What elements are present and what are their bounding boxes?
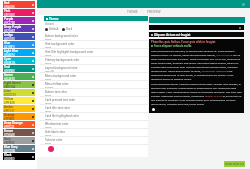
staticText: Button text color: [45, 90, 68, 94]
button[interactable]: Black: [3, 153, 35, 160]
button[interactable]: Purple: [3, 17, 35, 24]
staticText: Variant: [45, 22, 54, 26]
staticText: Layout background color: [45, 66, 78, 70]
staticText: none: [45, 94, 52, 97]
staticText: Amber: [4, 105, 14, 109]
staticText: Hint (file highlight) background color: [45, 50, 94, 54]
button[interactable]: Light Blue: [3, 49, 35, 56]
staticText: Aliquam dictum est feugiat: [154, 33, 191, 37]
button[interactable]: Brown: [3, 129, 35, 136]
button[interactable]: Indigo: [3, 33, 35, 40]
button[interactable]: Cyan: [3, 57, 35, 64]
button[interactable]: Teal: [3, 65, 35, 72]
button[interactable]: Yellow: [3, 97, 35, 104]
staticText: Blue Grey: [4, 145, 18, 149]
button[interactable]: Theme: [44, 16, 148, 21]
staticText: Yellow: [4, 97, 14, 101]
button[interactable]: Card title text color: [37, 105, 148, 113]
staticText: none: [45, 54, 52, 57]
staticText: none: [45, 38, 52, 41]
button[interactable]: Tab text color: [37, 137, 148, 145]
button[interactable]: Default: [45, 27, 59, 31]
button[interactable]: Aliquam dictum est feugiat: [149, 32, 244, 37]
button[interactable]: Button text color: [37, 89, 148, 97]
staticText: Hint background color: [45, 42, 75, 46]
staticText: Lime: [4, 89, 11, 93]
button[interactable]: Orange: [3, 113, 35, 120]
staticText: Red: [4, 1, 10, 5]
button[interactable]: Grey: [3, 137, 35, 144]
staticText: #F44336: [4, 5, 15, 8]
staticText: Light Green: [4, 81, 21, 85]
staticText: Tab text color: [45, 138, 63, 142]
staticText: #4CAF50: [4, 77, 15, 80]
staticText: Deep Orange: [4, 121, 23, 125]
staticText: none: [45, 142, 52, 145]
button[interactable]: Window text color: [37, 121, 148, 129]
staticText: Primary background color: [45, 58, 80, 62]
staticText: none: [45, 110, 52, 113]
staticText: #009688: [4, 69, 15, 72]
button[interactable]: Card pressed text color: [37, 97, 148, 105]
staticText: Fusce aliquam vehicula mollis: [154, 44, 192, 48]
button[interactable]: Dark: [62, 27, 73, 31]
staticText: Green: [4, 73, 13, 77]
button[interactable]: Light Green: [3, 81, 35, 88]
staticText: Light Blue: [4, 49, 19, 53]
staticText: #795548: [4, 133, 15, 136]
button[interactable]: Red: [3, 1, 35, 8]
button[interactable]: THEME: [124, 10, 141, 14]
button[interactable]: Layout background color: [37, 65, 148, 73]
staticText: #00BCD4: [4, 61, 16, 64]
button[interactable]: Menu follow color: [37, 81, 148, 89]
staticText: Black: [4, 153, 12, 157]
staticText: none: [45, 102, 52, 105]
button[interactable]: Lime: [3, 89, 35, 96]
staticText: Orange: [4, 113, 15, 117]
button[interactable]: Deep Orange: [3, 121, 35, 128]
staticText: THEME: [127, 10, 138, 14]
button[interactable]: materialize.css: [224, 161, 245, 167]
staticText: Card file highlighted color: [45, 114, 80, 118]
staticText: #FFEB3B: [4, 101, 15, 104]
button[interactable]: Pink: [3, 9, 35, 16]
button[interactable]: Card file highlighted color: [37, 113, 148, 121]
staticText: Indigo: [4, 33, 14, 37]
button[interactable]: Blue Grey: [3, 145, 35, 152]
staticText: PREVIEW: [147, 10, 161, 14]
staticText: none: [45, 134, 52, 137]
button[interactable]: Button background color: [37, 33, 148, 41]
staticText: #FFC107: [4, 109, 15, 112]
staticText: #673AB7: [4, 29, 15, 32]
staticText: Brown: [4, 129, 14, 133]
staticText: Purple: [4, 17, 14, 21]
button[interactable]: Blue: [3, 41, 35, 48]
staticText: Teal: [4, 65, 10, 69]
button[interactable]: Pick color: [48, 146, 54, 152]
staticText: Menu follow color: [45, 82, 69, 86]
staticText: Window text color: [45, 122, 69, 126]
button[interactable]: Menu background color: [37, 73, 148, 81]
staticText: #E91E63: [4, 13, 15, 16]
button[interactable]: Profile: [152, 108, 155, 111]
button[interactable]: PREVIEW: [144, 10, 164, 14]
button[interactable]: Primary background color: [37, 57, 148, 65]
staticText: Default: [49, 27, 59, 31]
staticText: #8BC34A: [4, 85, 16, 88]
button[interactable]: Hint background color: [37, 41, 148, 49]
staticText: Blue: [4, 41, 11, 45]
staticText: Pink: [4, 9, 11, 13]
button[interactable]: Amber: [3, 105, 35, 112]
button[interactable]: Account: [241, 2, 245, 6]
button[interactable]: Side label color: [37, 129, 148, 137]
button[interactable]: Deep Purple: [3, 25, 35, 32]
staticText: Card title text color: [45, 106, 71, 110]
staticText: Grey: [4, 137, 11, 141]
staticText: #607D8B: [4, 149, 16, 152]
staticText: materialize.css: [224, 162, 245, 166]
button[interactable]: Green: [3, 73, 35, 80]
button[interactable]: Add: [238, 26, 241, 29]
button[interactable]: Hint (file highlight) background color: [37, 49, 148, 57]
staticText: Menu background color: [45, 74, 77, 78]
staticText: grey 50: [45, 70, 54, 73]
